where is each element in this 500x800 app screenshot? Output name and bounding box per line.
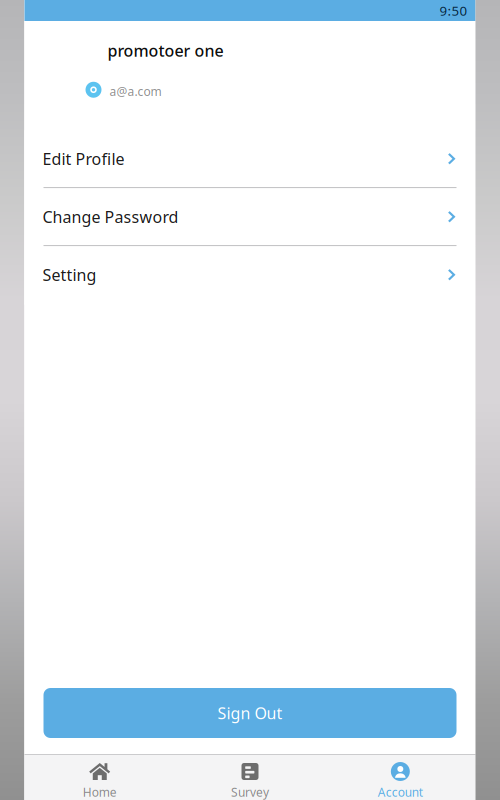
staticText: a@a.com (109, 83, 161, 99)
button[interactable]: Home (24, 755, 175, 800)
button[interactable]: Account (325, 755, 475, 800)
staticText: Account (378, 784, 423, 800)
staticText: Survey (231, 784, 269, 800)
staticText: promotoer one (107, 40, 223, 61)
button[interactable]: Edit Profile (24, 130, 475, 188)
staticText: 9:50 (439, 2, 467, 19)
button[interactable]: Sign Out (43, 688, 456, 738)
button[interactable]: Setting (24, 246, 475, 304)
staticText: Change Password (42, 206, 178, 227)
staticText: Home (83, 784, 117, 800)
staticText: Setting (42, 264, 96, 285)
staticText: Sign Out (217, 702, 282, 724)
button[interactable]: Survey (175, 755, 325, 800)
staticText: Edit Profile (42, 148, 124, 169)
button[interactable]: Change Password (24, 188, 475, 246)
